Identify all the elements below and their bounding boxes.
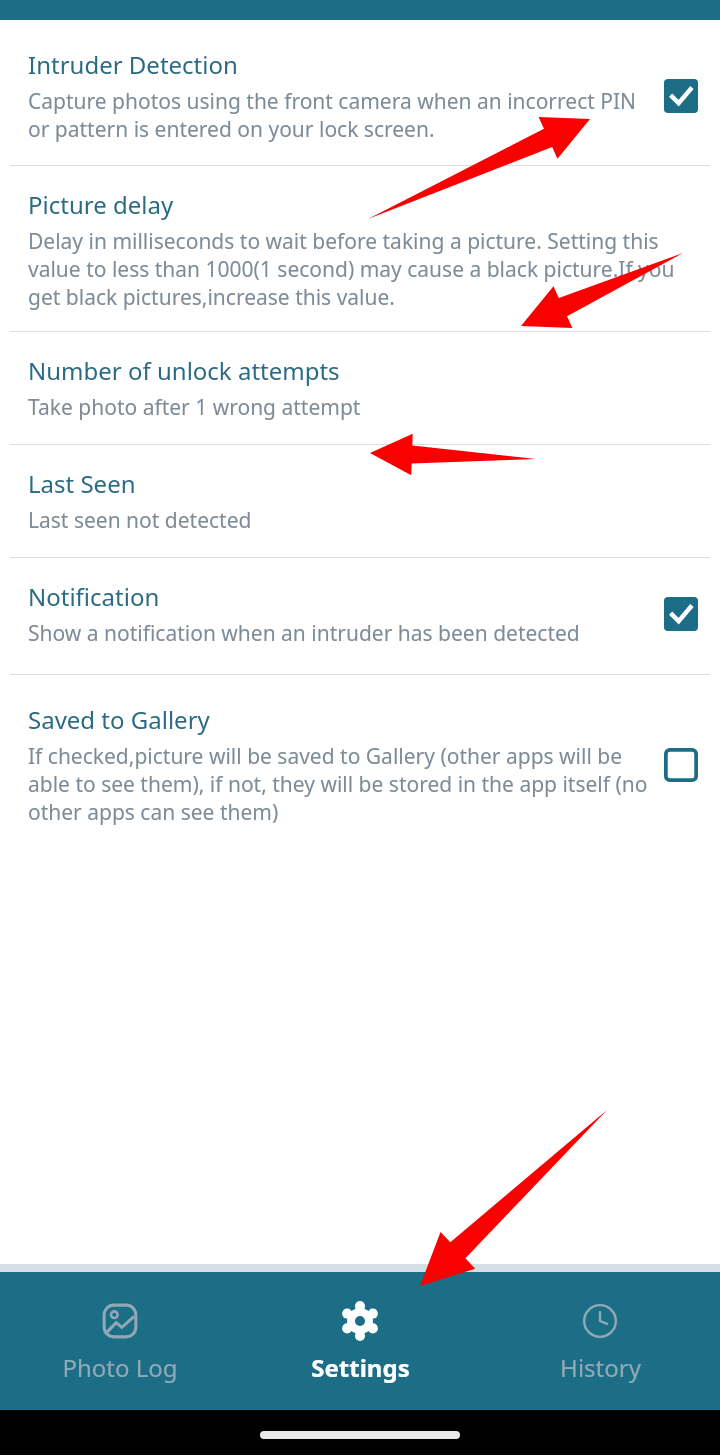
staticText: Last Seen [28, 467, 136, 500]
button[interactable]: Saved to Gallery [0, 675, 720, 848]
staticText: Settings [311, 1351, 410, 1384]
button[interactable]: Photo Log [0, 1291, 240, 1392]
button[interactable]: History [480, 1291, 720, 1392]
staticText: Capture photos using the front camera wh… [28, 87, 648, 143]
staticText: If checked,picture will be saved to Gall… [28, 742, 648, 826]
staticText: History [560, 1351, 641, 1384]
staticText: Delay in milliseconds to wait before tak… [28, 227, 698, 311]
staticText: Notification [28, 580, 160, 613]
button[interactable]: Picture delay [0, 166, 720, 331]
button[interactable]: Number of unlock attempts [0, 332, 720, 444]
staticText: Picture delay [28, 188, 174, 221]
button[interactable]: Intruder Detection [0, 20, 720, 165]
staticText: Number of unlock attempts [28, 354, 340, 387]
staticText: Last seen not detected [28, 506, 252, 535]
button[interactable]: Checked [664, 79, 698, 113]
button[interactable]: Notification [0, 558, 720, 674]
staticText: Take photo after 1 wrong attempt [28, 393, 361, 422]
button[interactable]: Last Seen [0, 445, 720, 557]
staticText: Saved to Gallery [28, 703, 210, 736]
staticText: Show a notification when an intruder has… [28, 619, 580, 648]
button[interactable]: Settings [240, 1291, 480, 1392]
staticText: Photo Log [62, 1351, 178, 1384]
button[interactable]: Checked [664, 597, 698, 631]
staticText: Intruder Detection [28, 48, 238, 81]
button[interactable]: Unchecked [664, 748, 698, 782]
